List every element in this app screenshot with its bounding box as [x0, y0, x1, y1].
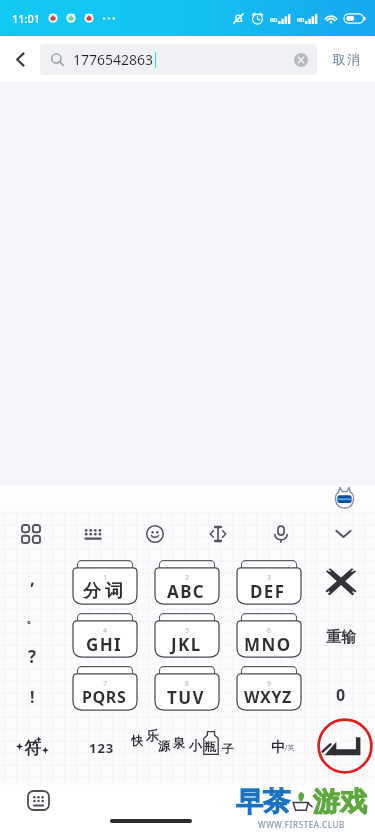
- staticText: WWW.FIRSTEA.CLUB: [258, 819, 345, 830]
- button[interactable]: 9: [237, 666, 301, 710]
- staticText: 11:01: [12, 11, 41, 26]
- button[interactable]: Switch keyboard: [27, 790, 50, 811]
- staticText: JKL: [171, 633, 202, 656]
- button[interactable]: 符: [8, 729, 56, 767]
- button[interactable]: 4: [73, 613, 137, 657]
- staticText: 7: [103, 679, 108, 689]
- button[interactable]: 123: [76, 729, 128, 767]
- staticText: ,: [30, 567, 35, 590]
- staticText: 3: [267, 573, 272, 583]
- staticText: HD: [270, 17, 278, 24]
- staticText: 瓶: [204, 739, 216, 754]
- button[interactable]: Enter: [317, 718, 373, 774]
- button[interactable]: Keyboard layout: [62, 511, 124, 556]
- button[interactable]: Backspace: [315, 560, 367, 604]
- button[interactable]: 7: [73, 666, 137, 710]
- button[interactable]: 3: [237, 560, 301, 604]
- button[interactable]: Back: [0, 36, 40, 82]
- staticText: 小: [189, 737, 202, 753]
- button[interactable]: 1776542863: [40, 44, 317, 75]
- staticText: DEF: [250, 580, 286, 603]
- button[interactable]: 8: [155, 666, 219, 710]
- staticText: ?: [28, 645, 37, 668]
- staticText: 符: [24, 738, 41, 759]
- staticText: WXYZ: [244, 686, 292, 708]
- staticText: 5: [185, 626, 190, 636]
- staticText: 9: [267, 679, 272, 689]
- staticText: 6: [267, 626, 272, 636]
- staticText: 0: [336, 684, 346, 706]
- staticText: 源: [158, 738, 170, 753]
- button[interactable]: 2: [155, 560, 219, 604]
- button[interactable]: 。: [8, 601, 56, 635]
- staticText: 游戏: [313, 785, 367, 819]
- staticText: 8: [185, 679, 190, 689]
- staticText: 1776542863: [73, 50, 154, 69]
- staticText: MNO: [244, 633, 292, 656]
- button[interactable]: Clear text: [288, 47, 314, 73]
- staticText: /英: [285, 743, 295, 753]
- staticText: HD: [297, 17, 305, 24]
- staticText: 子: [222, 741, 234, 756]
- staticText: 1: [103, 573, 108, 583]
- staticText: 123: [89, 739, 115, 757]
- staticText: PQRS: [82, 686, 127, 708]
- staticText: TUV: [167, 686, 205, 709]
- staticText: 重输: [326, 628, 356, 647]
- button[interactable]: 6: [237, 613, 301, 657]
- button[interactable]: ,: [8, 561, 56, 595]
- staticText: 分词: [81, 580, 125, 603]
- staticText: 早茶: [236, 785, 290, 819]
- staticText: 泉: [173, 735, 185, 750]
- button[interactable]: 快: [128, 725, 250, 769]
- button[interactable]: Voice input: [249, 511, 312, 556]
- button[interactable]: Hide keyboard: [312, 511, 375, 556]
- button[interactable]: 重输: [315, 615, 367, 659]
- button[interactable]: 0: [315, 675, 367, 715]
- staticText: 乐: [146, 727, 159, 743]
- staticText: 取消: [332, 51, 361, 67]
- button[interactable]: ?: [8, 639, 56, 673]
- staticText: 。: [26, 610, 39, 626]
- button[interactable]: !: [8, 680, 56, 714]
- button[interactable]: Cursor control: [186, 511, 249, 556]
- button[interactable]: Emoji: [124, 511, 186, 556]
- button[interactable]: Apps: [0, 511, 62, 556]
- button[interactable]: 1: [73, 560, 137, 604]
- staticText: 4: [103, 626, 108, 636]
- staticText: 中: [271, 739, 285, 757]
- button[interactable]: 中: [256, 729, 310, 767]
- staticText: ABC: [167, 580, 206, 603]
- staticText: 2: [185, 573, 190, 583]
- staticText: GHI: [86, 633, 123, 656]
- button[interactable]: 5: [155, 613, 219, 657]
- staticText: 快: [131, 733, 143, 748]
- staticText: !: [30, 686, 35, 708]
- button[interactable]: 取消: [317, 36, 375, 82]
